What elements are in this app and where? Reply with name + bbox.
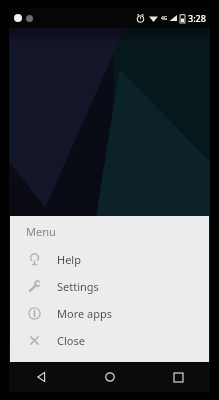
button[interactable]: More apps (10, 300, 209, 327)
staticText: Menu (26, 224, 56, 239)
button[interactable]: Settings (10, 273, 209, 300)
button[interactable]: Help (10, 246, 209, 273)
button[interactable]: Close (10, 327, 209, 354)
staticText: More apps (57, 306, 112, 321)
staticText: Close (57, 333, 85, 348)
staticText: Settings (57, 279, 99, 294)
staticText: 4G (161, 15, 168, 22)
staticText: 3:28 (188, 12, 206, 24)
button[interactable]: Recent apps (164, 363, 192, 391)
button[interactable]: Home (96, 363, 124, 391)
staticText: Help (57, 252, 81, 267)
button[interactable]: Back (27, 363, 55, 391)
